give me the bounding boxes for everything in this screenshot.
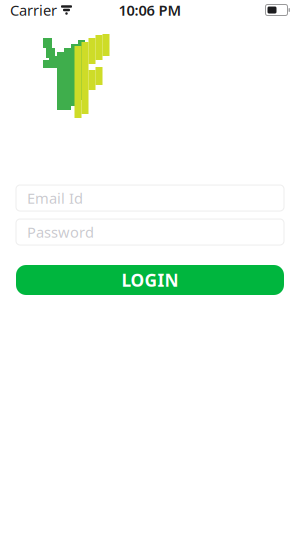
button[interactable]: LOGIN (16, 265, 284, 295)
staticText: Carrier (10, 0, 57, 20)
staticText: 10:06 PM (118, 0, 181, 20)
staticText: Password (27, 222, 94, 242)
staticText: Email Id (27, 188, 83, 208)
staticText: LOGIN (121, 268, 178, 291)
